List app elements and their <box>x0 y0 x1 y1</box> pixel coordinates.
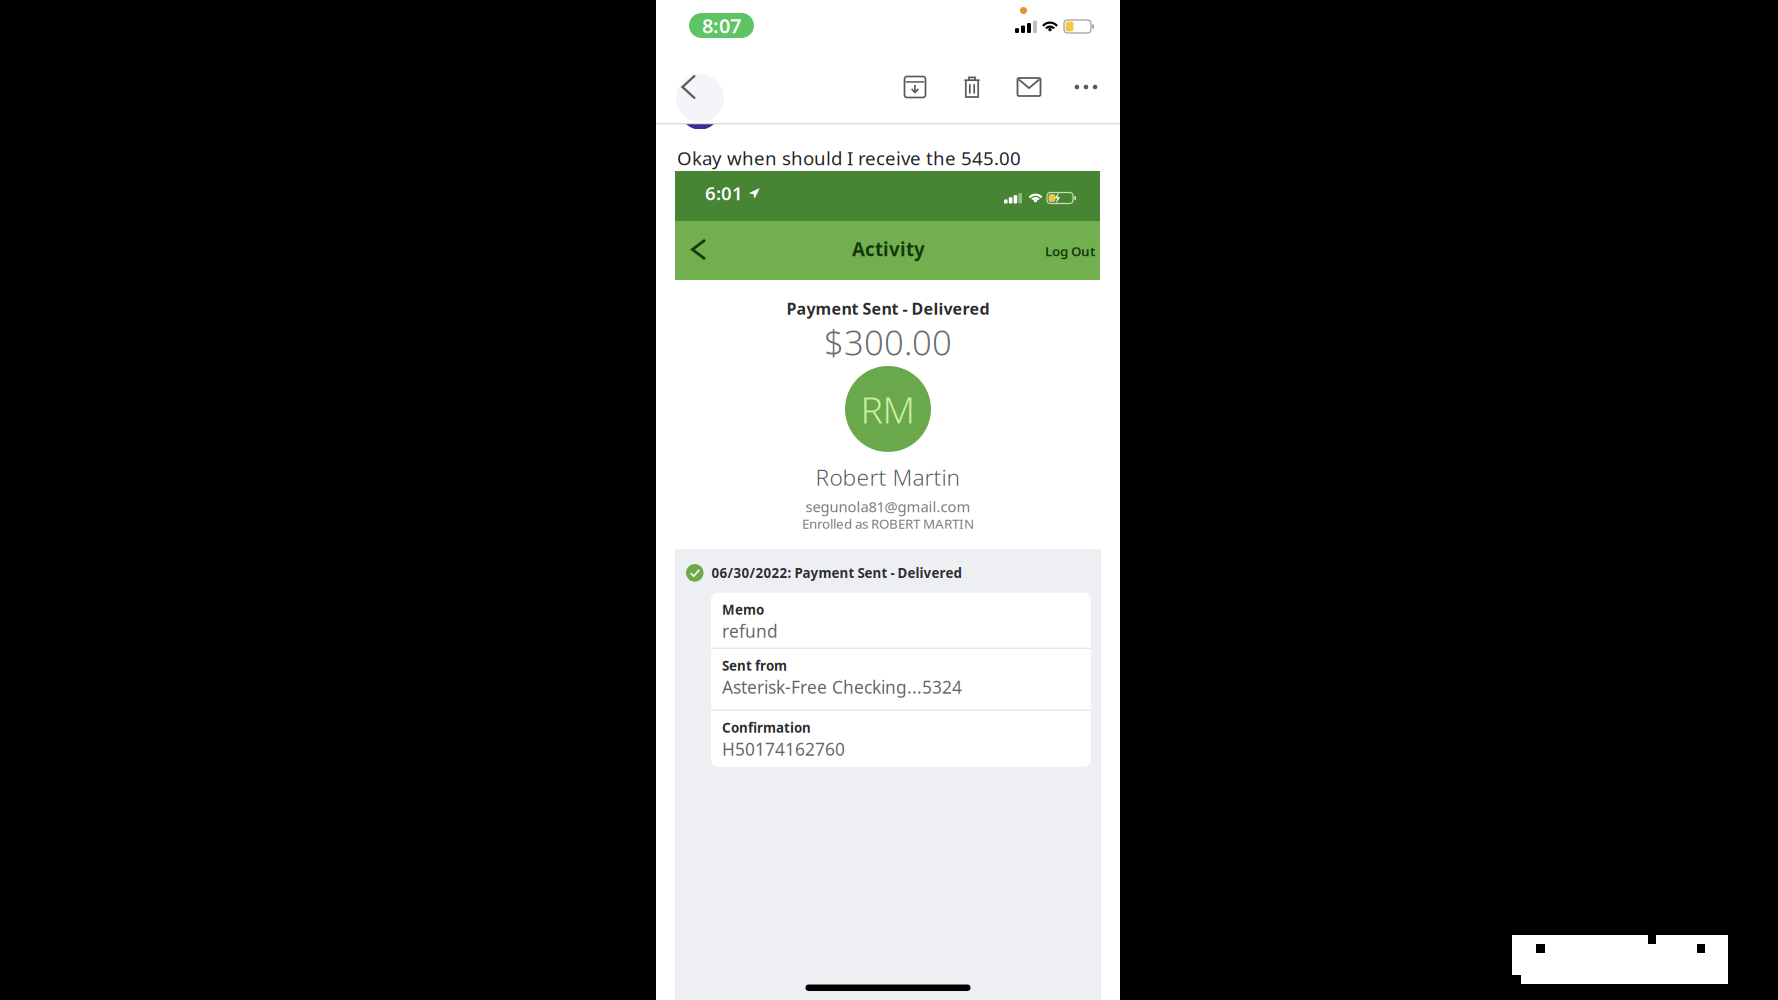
staticText: Activity <box>852 237 925 261</box>
button[interactable]: Archive <box>893 61 937 113</box>
staticText: RM <box>860 384 915 434</box>
staticText: Sent from <box>722 657 787 674</box>
staticText: 8:07 <box>702 12 741 39</box>
staticText: H50174162760 <box>722 737 845 760</box>
staticText: Enrolled as ROBERT MARTIN <box>802 515 974 532</box>
staticText: segunola81@gmail.com <box>805 497 970 516</box>
button[interactable]: Back <box>666 61 710 113</box>
button[interactable]: Mark unread <box>1007 61 1051 113</box>
staticText: refund <box>722 619 778 642</box>
staticText: 06/30/2022: Payment Sent - Delivered <box>711 564 961 582</box>
staticText: Confirmation <box>722 719 811 736</box>
staticText: Payment Sent - Delivered <box>786 298 989 319</box>
staticText: Log Out <box>1045 242 1095 260</box>
staticText: $300.00 <box>824 319 952 365</box>
staticText: Memo <box>722 601 764 618</box>
staticText: 6:01 <box>705 181 743 205</box>
button[interactable]: More options <box>1064 61 1108 113</box>
staticText: Okay when should I receive the 545.00 <box>677 146 1021 170</box>
button[interactable]: Delete <box>950 61 994 113</box>
staticText: Robert Martin <box>815 462 960 492</box>
staticText: Asterisk-Free Checking...5324 <box>722 675 962 698</box>
